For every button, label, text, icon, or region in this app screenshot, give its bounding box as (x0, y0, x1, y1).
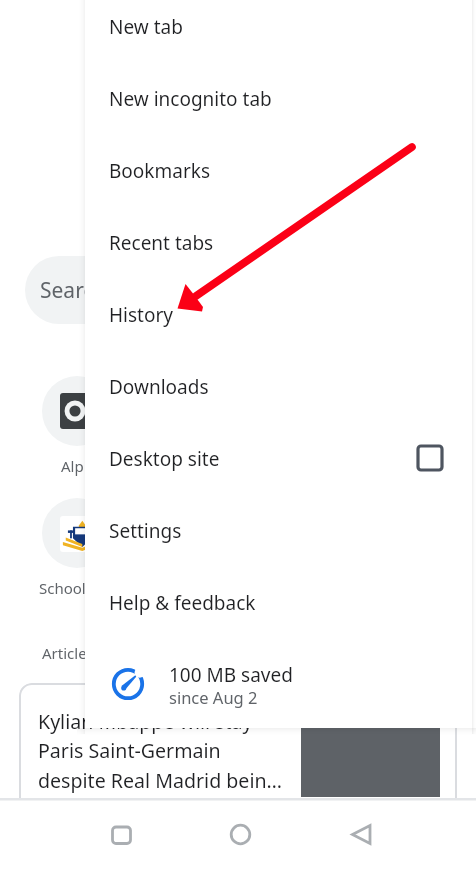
staticText: Alphabet (61, 456, 125, 476)
button[interactable]: Recent tabs (85, 216, 472, 270)
button[interactable]: 100 MB saved (85, 646, 472, 722)
button[interactable]: Home (226, 820, 255, 849)
button[interactable]: New tab (85, 0, 472, 54)
staticText: Kylian Mbappé will stay Paris Saint-Germ… (38, 708, 283, 794)
staticText: School (39, 578, 86, 598)
button[interactable]: Settings (85, 504, 472, 558)
staticText: Bookmarks (109, 158, 211, 184)
button[interactable]: Downloads (85, 360, 472, 414)
button[interactable]: History (85, 288, 472, 342)
button[interactable]: Bookmarks (85, 144, 472, 198)
staticText: Desktop site (109, 446, 220, 472)
button[interactable]: New incognito tab (85, 72, 472, 126)
button[interactable]: Search (25, 256, 265, 324)
button[interactable] (42, 376, 112, 446)
staticText: New tab (109, 14, 183, 40)
staticText: Articles for you (42, 643, 149, 663)
staticText: New incognito tab (109, 86, 272, 112)
button[interactable]: Help & feedback (85, 576, 472, 630)
staticText: 100 MB saved (169, 662, 293, 688)
staticText: Search (40, 276, 107, 305)
button[interactable]: Recent apps (107, 821, 136, 850)
button[interactable]: Back (347, 820, 376, 849)
button[interactable] (42, 498, 112, 568)
staticText: Recent tabs (109, 230, 214, 256)
button[interactable]: Desktop site checkbox (414, 442, 446, 474)
button[interactable]: Desktop site (85, 432, 472, 486)
staticText: History (109, 302, 173, 328)
button[interactable] (19, 683, 457, 813)
staticText: Help & feedback (109, 590, 256, 616)
staticText: Settings (109, 518, 182, 544)
staticText: since Aug 2 (169, 686, 258, 708)
staticText: Downloads (109, 374, 209, 400)
